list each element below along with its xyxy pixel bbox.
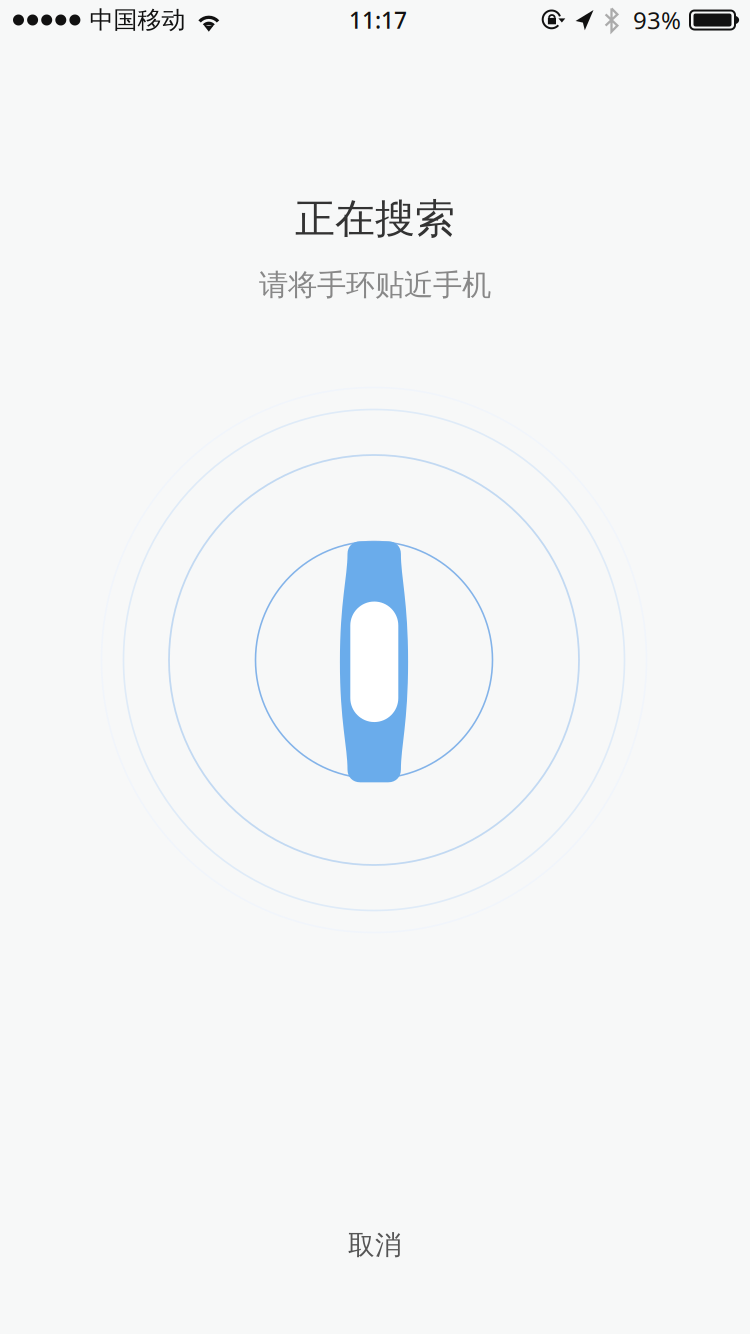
staticText: 中国移动	[89, 5, 185, 35]
staticText: 取消	[348, 1229, 402, 1261]
staticText: 正在搜索	[295, 194, 455, 243]
button[interactable]: 取消	[255, 1201, 495, 1289]
staticText: 请将手环贴近手机	[259, 267, 491, 303]
staticText: 93%	[633, 4, 681, 36]
staticText: 11:17	[349, 5, 407, 35]
